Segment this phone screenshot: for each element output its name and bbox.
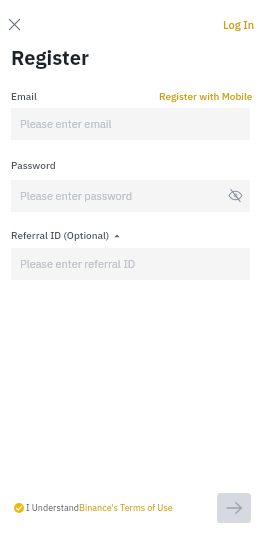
staticText: I UnderstandBinance's Terms of Use — [26, 502, 173, 514]
staticText: Please enter password — [20, 189, 133, 203]
button[interactable]: Please enter email — [11, 108, 250, 140]
button[interactable]: Referral ID (Optional) — [11, 229, 120, 242]
button[interactable]: Next — [217, 493, 251, 523]
staticText: Log In — [223, 18, 255, 32]
button[interactable]: Please enter referral ID — [11, 248, 250, 280]
button[interactable]: I UnderstandBinance's Terms of Use — [14, 502, 173, 514]
staticText: Password — [11, 159, 56, 172]
staticText: Email — [11, 90, 37, 103]
button[interactable]: Register with Mobile — [159, 90, 253, 103]
staticText: Register — [11, 44, 89, 70]
staticText: Register with Mobile — [159, 90, 253, 103]
button[interactable]: Please enter password — [11, 180, 250, 212]
staticText: Referral ID (Optional) — [11, 229, 110, 242]
button[interactable]: Log In — [218, 15, 260, 35]
staticText: Please enter email — [20, 117, 112, 131]
staticText: Please enter referral ID — [20, 257, 136, 271]
button[interactable]: Close — [3, 13, 26, 36]
